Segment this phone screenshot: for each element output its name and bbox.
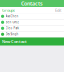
staticText: Edit xyxy=(55,8,61,13)
staticText: New Contact xyxy=(2,39,27,44)
staticText: Ben Ortiz xyxy=(6,20,19,24)
staticText: Groups xyxy=(2,8,15,13)
staticText: Ava Chen xyxy=(6,14,19,18)
staticText: Dev Singh xyxy=(6,32,19,36)
staticText: Cleo Park xyxy=(6,26,19,30)
staticText: Contacts xyxy=(21,0,43,7)
